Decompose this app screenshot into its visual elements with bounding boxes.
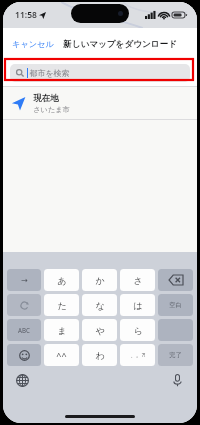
staticText: ら: [133, 325, 143, 336]
button[interactable]: キャンセル: [10, 36, 56, 52]
button[interactable]: [7, 294, 41, 316]
staticText: 、。?!: [130, 351, 146, 359]
button[interactable]: Dictation: [169, 372, 186, 389]
button[interactable]: 、。?!: [120, 344, 155, 366]
button[interactable]: 現在地: [3, 87, 197, 119]
button[interactable]: は: [120, 294, 155, 316]
staticText: 空白: [169, 301, 182, 309]
button[interactable]: さ: [120, 269, 155, 291]
button[interactable]: →: [7, 269, 41, 291]
staticText: は: [133, 300, 143, 311]
staticText: や: [95, 325, 105, 336]
staticText: ま: [57, 325, 67, 336]
button[interactable]: わ: [82, 344, 117, 366]
staticText: →: [21, 276, 28, 285]
staticText: 完了: [169, 351, 182, 359]
button[interactable]: か: [82, 269, 117, 291]
staticText: な: [95, 300, 105, 311]
button[interactable]: あ: [44, 269, 79, 291]
button[interactable]: 空白: [158, 294, 193, 316]
staticText: 都市を検索: [29, 68, 70, 78]
staticText: 現在地: [33, 93, 59, 104]
button[interactable]: ら: [120, 319, 155, 341]
staticText: た: [57, 300, 67, 311]
staticText: さいたま市: [33, 105, 70, 114]
button[interactable]: た: [44, 294, 79, 316]
staticText: か: [95, 275, 105, 286]
button[interactable]: [158, 269, 193, 291]
button[interactable]: ま: [44, 319, 79, 341]
button[interactable]: や: [82, 319, 117, 341]
staticText: 11:58: [15, 9, 37, 21]
button[interactable]: 完了: [158, 344, 193, 366]
staticText: キャンセル: [12, 39, 54, 49]
staticText: ABC: [18, 326, 30, 334]
button[interactable]: Switch keyboard: [14, 372, 31, 389]
staticText: さ: [133, 275, 143, 286]
staticText: あ: [57, 275, 67, 286]
button[interactable]: ^^: [44, 344, 79, 366]
button[interactable]: [7, 344, 41, 366]
button[interactable]: ABC: [7, 319, 41, 341]
staticText: わ: [95, 350, 105, 361]
button[interactable]: な: [82, 294, 117, 316]
staticText: ^^: [56, 349, 67, 361]
button[interactable]: 都市を検索: [10, 64, 190, 82]
staticText: 新しいマップをダウンロード: [63, 39, 177, 50]
